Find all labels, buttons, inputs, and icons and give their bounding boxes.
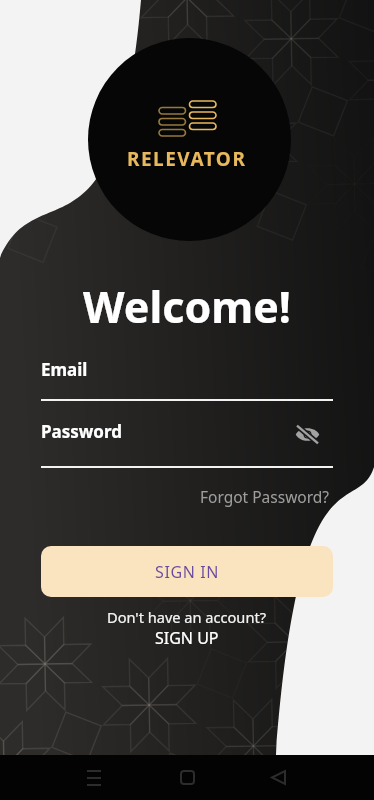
staticText: Welcome! [0,277,374,336]
button[interactable]: Back [259,761,298,794]
staticText: RELEVATOR [127,146,247,172]
button[interactable]: Recent apps [74,761,113,794]
button[interactable]: Show password [293,421,322,448]
button[interactable]: Home [168,761,207,794]
staticText: Don't have an account? [107,607,267,627]
button[interactable]: SIGN IN [41,546,333,597]
button[interactable]: SIGN UP [155,627,219,649]
staticText: SIGN IN [155,561,219,583]
staticText: SIGN UP [155,627,219,649]
staticText: Email [41,358,88,381]
button[interactable]: Forgot Password? [196,483,334,510]
staticText: Password [41,420,122,443]
staticText: Forgot Password? [200,486,330,507]
